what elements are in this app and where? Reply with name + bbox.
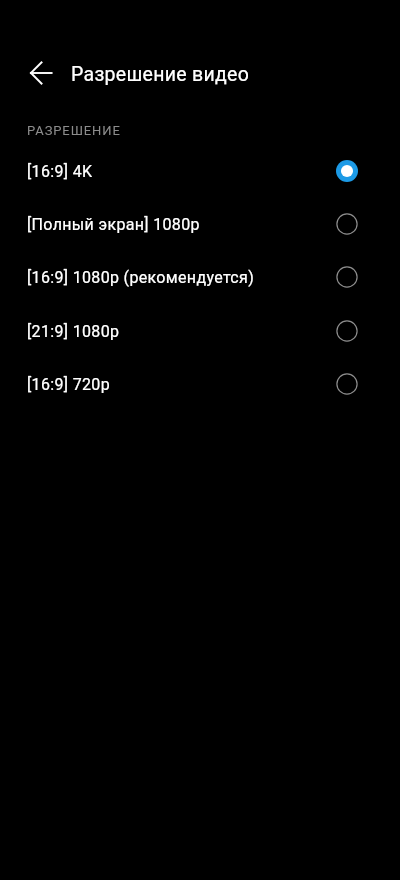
staticText: РАЗРЕШЕНИЕ [27, 123, 121, 138]
staticText: [21:9] 1080p [27, 322, 120, 341]
staticText: [16:9] 1080p (рекомендуется) [27, 268, 255, 287]
button[interactable]: [16:9] 4K [0, 144, 400, 197]
staticText: Разрешение видео [71, 63, 250, 86]
staticText: [16:9] 720p [27, 375, 110, 394]
staticText: [16:9] 4K [27, 162, 93, 181]
button[interactable]: [Полный экран] 1080p [0, 197, 400, 250]
staticText: [Полный экран] 1080p [27, 215, 200, 234]
button[interactable]: [16:9] 1080p (рекомендуется) [0, 250, 400, 303]
button[interactable]: [16:9] 720p [0, 357, 400, 410]
button[interactable]: Back [18, 49, 66, 97]
button[interactable]: [21:9] 1080p [0, 304, 400, 357]
